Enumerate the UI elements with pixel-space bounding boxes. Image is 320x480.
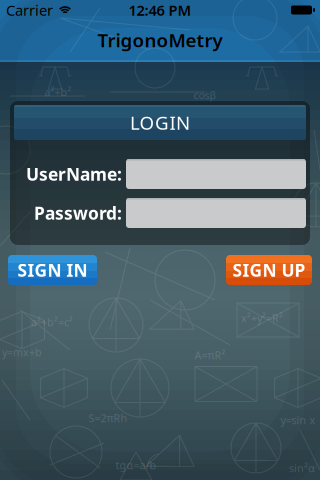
staticText: TrigonoMetry <box>97 28 222 52</box>
staticText: cosβ <box>193 88 216 102</box>
staticText: Carrier <box>6 0 53 20</box>
staticText: UserName: <box>26 162 122 185</box>
staticText: A=πR² <box>194 348 225 362</box>
staticText: a²+b² <box>44 85 71 99</box>
staticText: SIGN UP <box>232 258 305 281</box>
staticText: y=mx+b <box>2 345 42 359</box>
button[interactable]: SIGN IN <box>8 255 97 285</box>
staticText: x²+y²=R² <box>241 311 283 325</box>
button[interactable]: UserName text field <box>126 159 306 189</box>
staticText: LOGIN <box>130 110 190 135</box>
button[interactable]: SIGN UP <box>226 255 312 285</box>
staticText: S=2πRh <box>88 411 127 425</box>
staticText: SIGN IN <box>17 258 87 281</box>
staticText: tgα=a/b <box>115 458 156 472</box>
staticText: 12:46 PM <box>128 0 191 20</box>
staticText: Password: <box>34 201 122 224</box>
staticText: sin²α <box>289 461 315 475</box>
staticText: a²+b²=c² <box>31 315 73 329</box>
staticText: y=sin x <box>280 413 315 427</box>
button[interactable]: Password text field <box>126 198 306 228</box>
